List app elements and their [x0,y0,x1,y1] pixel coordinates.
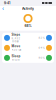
staticText: ‹ [2,5,4,12]
staticText: 82% [38,36,44,39]
button[interactable]: Sleep [2,53,54,63]
staticText: Move [11,44,20,48]
staticText: 7h 12m [11,58,19,61]
staticText: Sleep [11,54,20,58]
staticText: 68% [24,24,31,28]
staticText: 9:41 [4,1,10,5]
staticText: 420 cal [11,48,21,51]
staticText: 90% [38,56,44,59]
button[interactable]: Steps [2,33,54,43]
staticText: Steps [11,33,20,36]
button[interactable]: Back [0,6,6,11]
staticText: 64% [38,46,44,49]
button[interactable]: Move [2,43,54,53]
staticText: Activity [22,6,34,11]
staticText: 8,432 today [11,37,20,43]
